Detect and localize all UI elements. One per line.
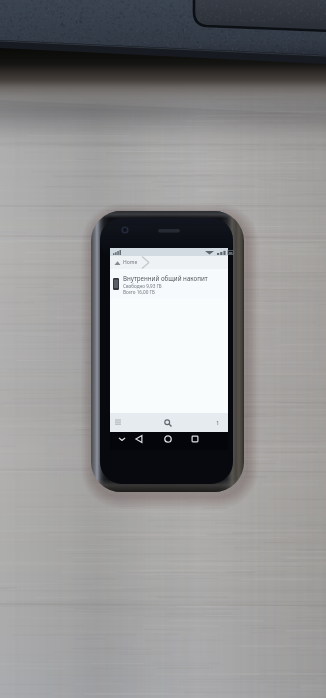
button[interactable]: Внутренний общий накопит: [110, 269, 228, 299]
button[interactable]: Recents: [189, 432, 201, 450]
button[interactable]: Home: [162, 432, 174, 450]
button[interactable]: Home: [110, 256, 228, 269]
staticText: Свободно 9,93 ГБ: [123, 283, 162, 289]
button[interactable]: Sort: [210, 415, 226, 430]
staticText: 1: [216, 419, 220, 427]
button[interactable]: Search: [159, 415, 177, 430]
staticText: Внутренний общий накопит: [123, 274, 208, 282]
button[interactable]: Hide keyboard: [116, 432, 128, 450]
staticText: Home: [123, 259, 138, 266]
button[interactable]: Menu: [110, 415, 126, 430]
button[interactable]: Back: [133, 432, 145, 450]
staticText: Всего 16,00 ГБ: [123, 289, 155, 295]
